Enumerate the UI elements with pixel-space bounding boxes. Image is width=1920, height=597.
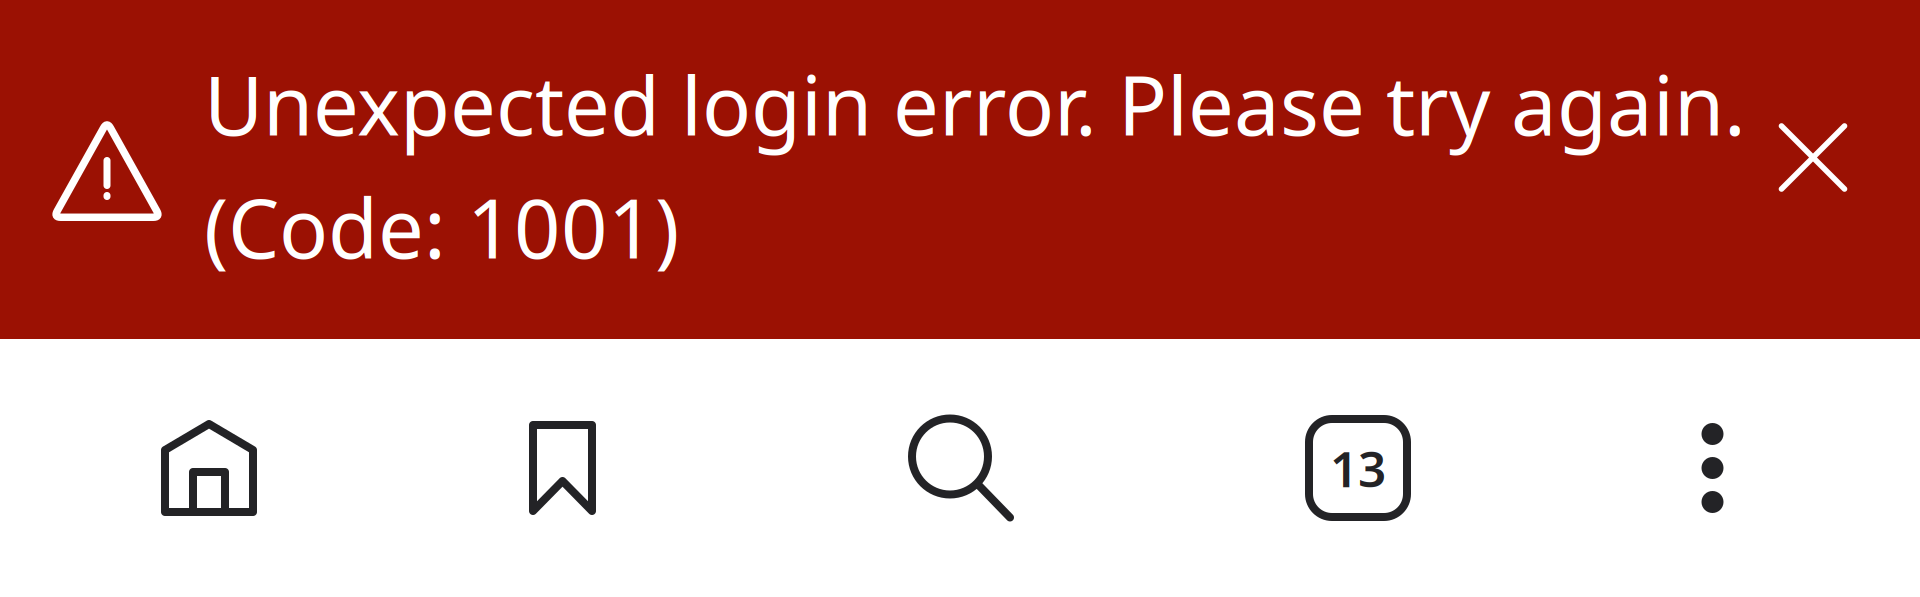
button[interactable]: Tabs, 13 open: [1215, 339, 1501, 597]
staticText: (Code: 1001): [204, 173, 679, 281]
staticText: Unexpected login error. Please try again…: [204, 50, 1746, 158]
button[interactable]: Dismiss: [1748, 92, 1920, 246]
button[interactable]: Home: [0, 339, 418, 597]
button[interactable]: Search: [707, 339, 1215, 597]
button[interactable]: More options: [1501, 339, 1920, 597]
button[interactable]: Bookmarks: [418, 339, 707, 597]
staticText: 13: [1330, 435, 1386, 501]
